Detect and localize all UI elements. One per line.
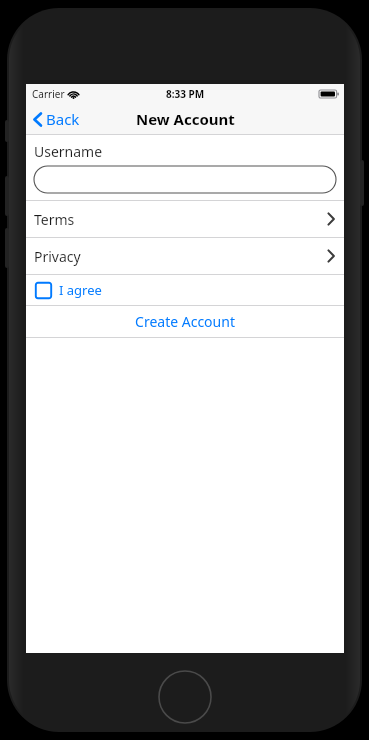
staticText: I agree xyxy=(59,281,102,299)
button[interactable]: Create Account xyxy=(26,306,344,337)
other: Home xyxy=(158,670,212,724)
button[interactable]: Back xyxy=(26,104,88,134)
staticText: Create Account xyxy=(135,312,235,331)
staticText: Privacy xyxy=(34,247,327,266)
staticText: Username xyxy=(34,142,103,161)
button[interactable]: Terms xyxy=(26,201,344,237)
button[interactable]: I agree xyxy=(26,275,344,305)
staticText: Carrier xyxy=(32,87,65,101)
button[interactable]: Privacy xyxy=(26,238,344,274)
staticText: Back xyxy=(46,109,80,129)
staticText: Terms xyxy=(34,210,327,229)
button[interactable] xyxy=(34,166,336,193)
staticText: 8:33 PM xyxy=(166,87,205,101)
staticText: New Account xyxy=(136,109,235,129)
